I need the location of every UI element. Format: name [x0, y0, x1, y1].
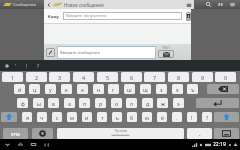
button[interactable]: н — [93, 84, 104, 94]
staticText: ? — [37, 63, 39, 69]
button[interactable]: Back — [47, 2, 51, 8]
button[interactable]: ы — [33, 98, 44, 108]
button[interactable]: Keyboard — [214, 128, 239, 139]
button[interactable]: 6 — [121, 72, 142, 82]
staticText: о — [115, 100, 119, 107]
button[interactable]: п — [79, 98, 90, 108]
staticText: ь — [116, 114, 119, 121]
staticText: ' — [15, 63, 17, 69]
button[interactable]: 8 — [168, 72, 189, 82]
button[interactable]: 9 — [192, 72, 213, 82]
button[interactable]: 1 — [2, 72, 23, 82]
staticText: е — [81, 86, 84, 93]
staticText: 3 — [58, 74, 62, 81]
button[interactable]: к — [61, 84, 72, 94]
button[interactable]: щ — [140, 84, 151, 94]
button[interactable]: Recent apps — [30, 141, 37, 148]
staticText: х — [176, 86, 179, 93]
staticText: ё — [161, 114, 164, 121]
staticText: к — [65, 86, 68, 93]
button[interactable]: р — [95, 98, 106, 108]
button[interactable]: 2 — [26, 72, 47, 82]
button[interactable]: ц — [29, 84, 40, 94]
staticText: д — [146, 100, 150, 107]
button[interactable]: 5 — [97, 72, 118, 82]
staticText: ! — [26, 63, 28, 69]
button[interactable]: ! — [187, 112, 197, 122]
button[interactable]: . — [187, 128, 212, 139]
button[interactable]: г — [108, 84, 119, 94]
button[interactable]: Введите сообщение — [57, 46, 156, 59]
button[interactable]: Shift — [214, 112, 239, 122]
staticText: 7 — [153, 74, 157, 81]
button[interactable]: о — [111, 98, 122, 108]
button[interactable]: ж — [157, 98, 168, 108]
staticText: п — [83, 100, 87, 107]
button[interactable]: э — [173, 98, 184, 108]
button[interactable]: . — [172, 112, 182, 122]
button[interactable]: More options — [229, 1, 236, 8]
staticText: й — [18, 86, 22, 93]
button[interactable]: у — [45, 84, 56, 94]
button[interactable]: б — [127, 112, 137, 122]
button[interactable]: и — [82, 112, 92, 122]
button[interactable]: й — [14, 84, 25, 94]
staticText: р — [99, 100, 103, 107]
button[interactable]: Screenshot — [43, 141, 50, 148]
button[interactable]: Backspace — [207, 84, 239, 94]
button[interactable]: д — [142, 98, 153, 108]
button[interactable]: с — [52, 112, 62, 122]
button[interactable]: ч — [37, 112, 47, 122]
button[interactable]: Сообщения — [0, 0, 44, 9]
staticText: ъ — [191, 86, 195, 93]
button[interactable]: Space — [57, 128, 184, 139]
button[interactable]: ё — [157, 112, 167, 122]
button[interactable]: Shift — [1, 112, 17, 122]
button[interactable]: List options — [186, 2, 192, 8]
button[interactable]: ю — [142, 112, 152, 122]
button[interactable]: я — [22, 112, 32, 122]
button[interactable]: 4 — [73, 72, 94, 82]
staticText: 6 — [130, 74, 134, 81]
staticText: Русский — [115, 129, 127, 133]
button[interactable]: ф — [17, 98, 28, 108]
staticText: 9 — [201, 74, 205, 81]
button[interactable]: Settings — [32, 128, 53, 139]
staticText: э — [177, 100, 180, 107]
staticText: ж — [161, 100, 165, 107]
staticText: н — [97, 86, 101, 93]
button[interactable]: Back — [4, 141, 11, 148]
staticText: я — [26, 114, 29, 121]
button[interactable]: з — [156, 84, 167, 94]
button[interactable]: Search — [205, 1, 212, 8]
button[interactable]: 7 — [144, 72, 165, 82]
staticText: ч — [40, 114, 44, 121]
staticText: ? — [206, 114, 209, 121]
button[interactable]: Home — [17, 141, 24, 148]
button[interactable]: ? — [202, 112, 212, 122]
button[interactable]: в — [48, 98, 59, 108]
button[interactable]: Send — [158, 50, 174, 58]
button[interactable]: л — [126, 98, 137, 108]
staticText: . — [176, 114, 178, 121]
button[interactable]: ш — [124, 84, 135, 94]
button[interactable]: 0 — [215, 72, 236, 82]
button[interactable]: т — [97, 112, 107, 122]
button[interactable]: е — [77, 84, 88, 94]
button[interactable]: Введите получателя — [63, 12, 182, 20]
button[interactable]: ь — [112, 112, 122, 122]
button[interactable]: ъ — [187, 84, 198, 94]
button[interactable]: Attach — [46, 48, 55, 57]
button[interactable]: м — [67, 112, 77, 122]
button[interactable]: SYM — [3, 128, 28, 139]
button[interactable]: 3 — [49, 72, 70, 82]
staticText: ! — [191, 114, 193, 121]
button[interactable]: а — [64, 98, 75, 108]
staticText: ы — [37, 100, 41, 107]
button[interactable]: Enter — [196, 98, 239, 108]
button[interactable]: New message — [217, 1, 224, 8]
staticText: ц — [33, 86, 37, 93]
button[interactable]: Contacts — [186, 12, 191, 21]
button[interactable]: х — [172, 84, 183, 94]
staticText: Кому — [48, 14, 59, 19]
